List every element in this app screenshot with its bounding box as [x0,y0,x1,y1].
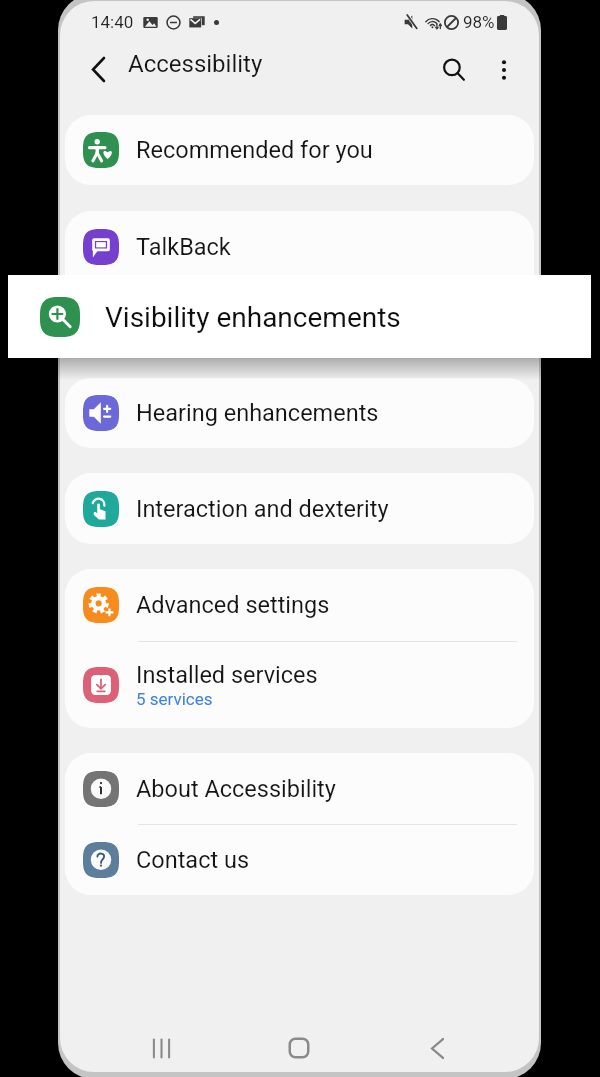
button[interactable]: Contact us [65,825,534,895]
button[interactable]: Accessibility [128,50,263,78]
button[interactable]: Recent apps [93,1024,230,1072]
button[interactable]: Visibility enhancements [65,282,534,353]
staticText: Hearing enhancements [136,399,379,427]
staticText: Accessibility [128,50,263,78]
staticText: Installed services [136,661,318,689]
staticText: 98% [463,12,495,32]
button[interactable]: About Accessibility [65,753,534,824]
staticText: About Accessibility [136,775,336,803]
button[interactable]: Installed services [65,642,534,728]
staticText: Interaction and dexterity [136,495,389,523]
staticText: 14:40 [91,12,134,32]
button[interactable]: Navigate up [74,45,122,93]
button[interactable]: Home [230,1024,368,1072]
staticText: Visibility enhancements [105,301,401,334]
button[interactable]: More options [480,46,528,94]
button[interactable]: Recommended for you [65,115,534,185]
staticText: Advanced settings [136,591,330,619]
button[interactable]: Interaction and dexterity [65,473,534,544]
staticText: 5 services [136,689,213,709]
button[interactable]: Back [368,1024,506,1072]
staticText: Contact us [136,846,250,874]
staticText: Recommended for you [136,136,373,164]
button[interactable]: TalkBack [65,211,534,282]
button[interactable]: Advanced settings [65,569,534,641]
button[interactable]: Search [430,46,478,94]
staticText: TalkBack [136,233,231,261]
button[interactable]: Visibility enhancements [8,275,591,358]
staticText: Visibility enhancements [136,304,385,332]
button[interactable]: Hearing enhancements [65,378,534,448]
